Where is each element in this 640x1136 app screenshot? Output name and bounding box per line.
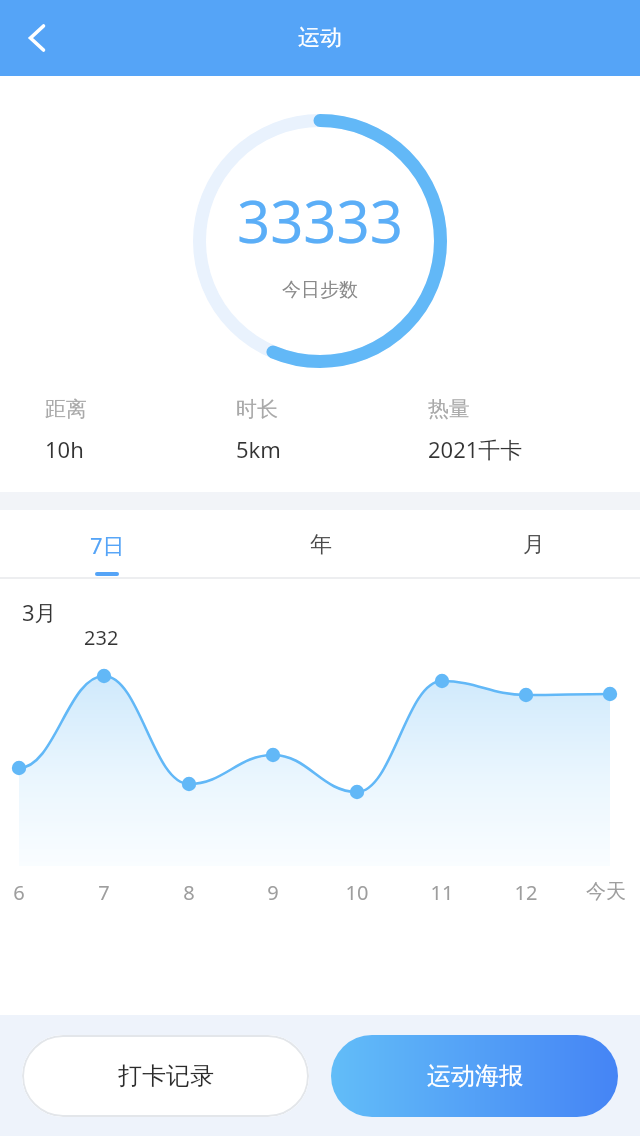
staticText: 时长 — [236, 396, 278, 422]
staticText: 12 — [496, 879, 556, 906]
staticText: 年 — [310, 531, 332, 559]
staticText: 11 — [412, 879, 472, 906]
staticText: 232 — [84, 624, 119, 651]
button[interactable]: 年 — [214, 510, 427, 579]
staticText: 9 — [243, 879, 303, 906]
staticText: 距离 — [45, 396, 87, 422]
staticText: 5km — [236, 434, 281, 464]
button[interactable]: 7日 — [0, 510, 214, 579]
button[interactable]: Back — [13, 14, 61, 62]
staticText: 运动海报 — [427, 1061, 523, 1091]
staticText: 7 — [74, 879, 134, 906]
staticText: 8 — [159, 879, 219, 906]
staticText: 打卡记录 — [118, 1061, 214, 1091]
staticText: 热量 — [428, 396, 470, 422]
button[interactable]: 打卡记录 — [22, 1035, 309, 1117]
staticText: 33333 — [237, 181, 403, 260]
staticText: 10 — [327, 879, 387, 906]
staticText: 6 — [0, 879, 49, 906]
button[interactable]: 运动海报 — [331, 1035, 618, 1117]
staticText: 3月 — [22, 597, 57, 627]
staticText: 运动 — [298, 24, 342, 52]
button[interactable]: 月 — [427, 510, 640, 579]
staticText: 10h — [45, 434, 84, 464]
staticText: 今日步数 — [282, 278, 358, 302]
staticText: 2021千卡 — [428, 434, 523, 464]
staticText: 今天 — [576, 879, 636, 904]
staticText: 7日 — [90, 530, 125, 560]
staticText: 月 — [523, 531, 545, 559]
